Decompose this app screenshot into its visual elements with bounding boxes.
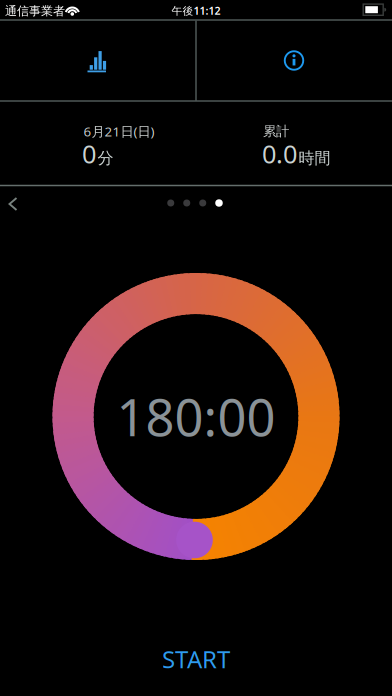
staticText: 分 (97, 148, 113, 168)
staticText: 時間 (298, 148, 330, 168)
staticText: 6月21日(日) (83, 122, 154, 140)
button[interactable]: Info (196, 21, 391, 100)
staticText: 累計 (263, 123, 289, 139)
button[interactable]: Statistics (0, 21, 195, 100)
staticText: START (162, 643, 230, 675)
staticText: 通信事業者 (5, 4, 65, 18)
staticText: 180:00 (116, 383, 275, 450)
staticText: 午後11:12 (171, 3, 220, 18)
button[interactable]: Back (0, 190, 27, 218)
staticText: 0 (82, 137, 96, 170)
button[interactable]: START (116, 637, 276, 681)
staticText: 0.0 (262, 137, 297, 170)
